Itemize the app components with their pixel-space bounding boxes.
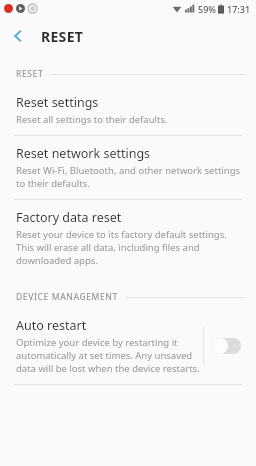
staticText: Reset your device to its factory default… <box>16 228 227 241</box>
staticText: Reset network settings <box>16 145 151 162</box>
staticText: Reset settings <box>16 94 99 111</box>
staticText: 17:31 <box>227 3 251 15</box>
staticText: Optimize your device by restarting it <box>16 336 178 349</box>
staticText: RESET <box>16 68 44 80</box>
staticText: DEVICE MANAGEMENT <box>16 291 118 303</box>
staticText: Auto restart <box>16 317 87 334</box>
button[interactable]: Back <box>0 18 36 54</box>
staticText: automatically at set times. Any unsaved <box>16 349 193 362</box>
staticText: Factory data reset <box>16 209 122 226</box>
button[interactable]: Reset network settings <box>0 136 256 199</box>
button[interactable]: Reset settings <box>0 85 256 135</box>
button[interactable]: Auto restart <box>0 308 256 384</box>
button[interactable]: Auto restart toggle <box>204 324 248 368</box>
button[interactable]: Factory data reset <box>0 200 256 276</box>
staticText: downloaded apps. <box>16 254 98 267</box>
staticText: to their defaults. <box>16 177 90 190</box>
staticText: Reset all settings to their defaults. <box>16 113 168 126</box>
staticText: RESET <box>41 27 84 46</box>
staticText: data will be lost when the device restar… <box>16 362 200 375</box>
staticText: This will erase all data, including file… <box>16 241 200 254</box>
staticText: Reset Wi-Fi, Bluetooth, and other networ… <box>16 164 241 177</box>
staticText: 59% <box>198 3 216 15</box>
